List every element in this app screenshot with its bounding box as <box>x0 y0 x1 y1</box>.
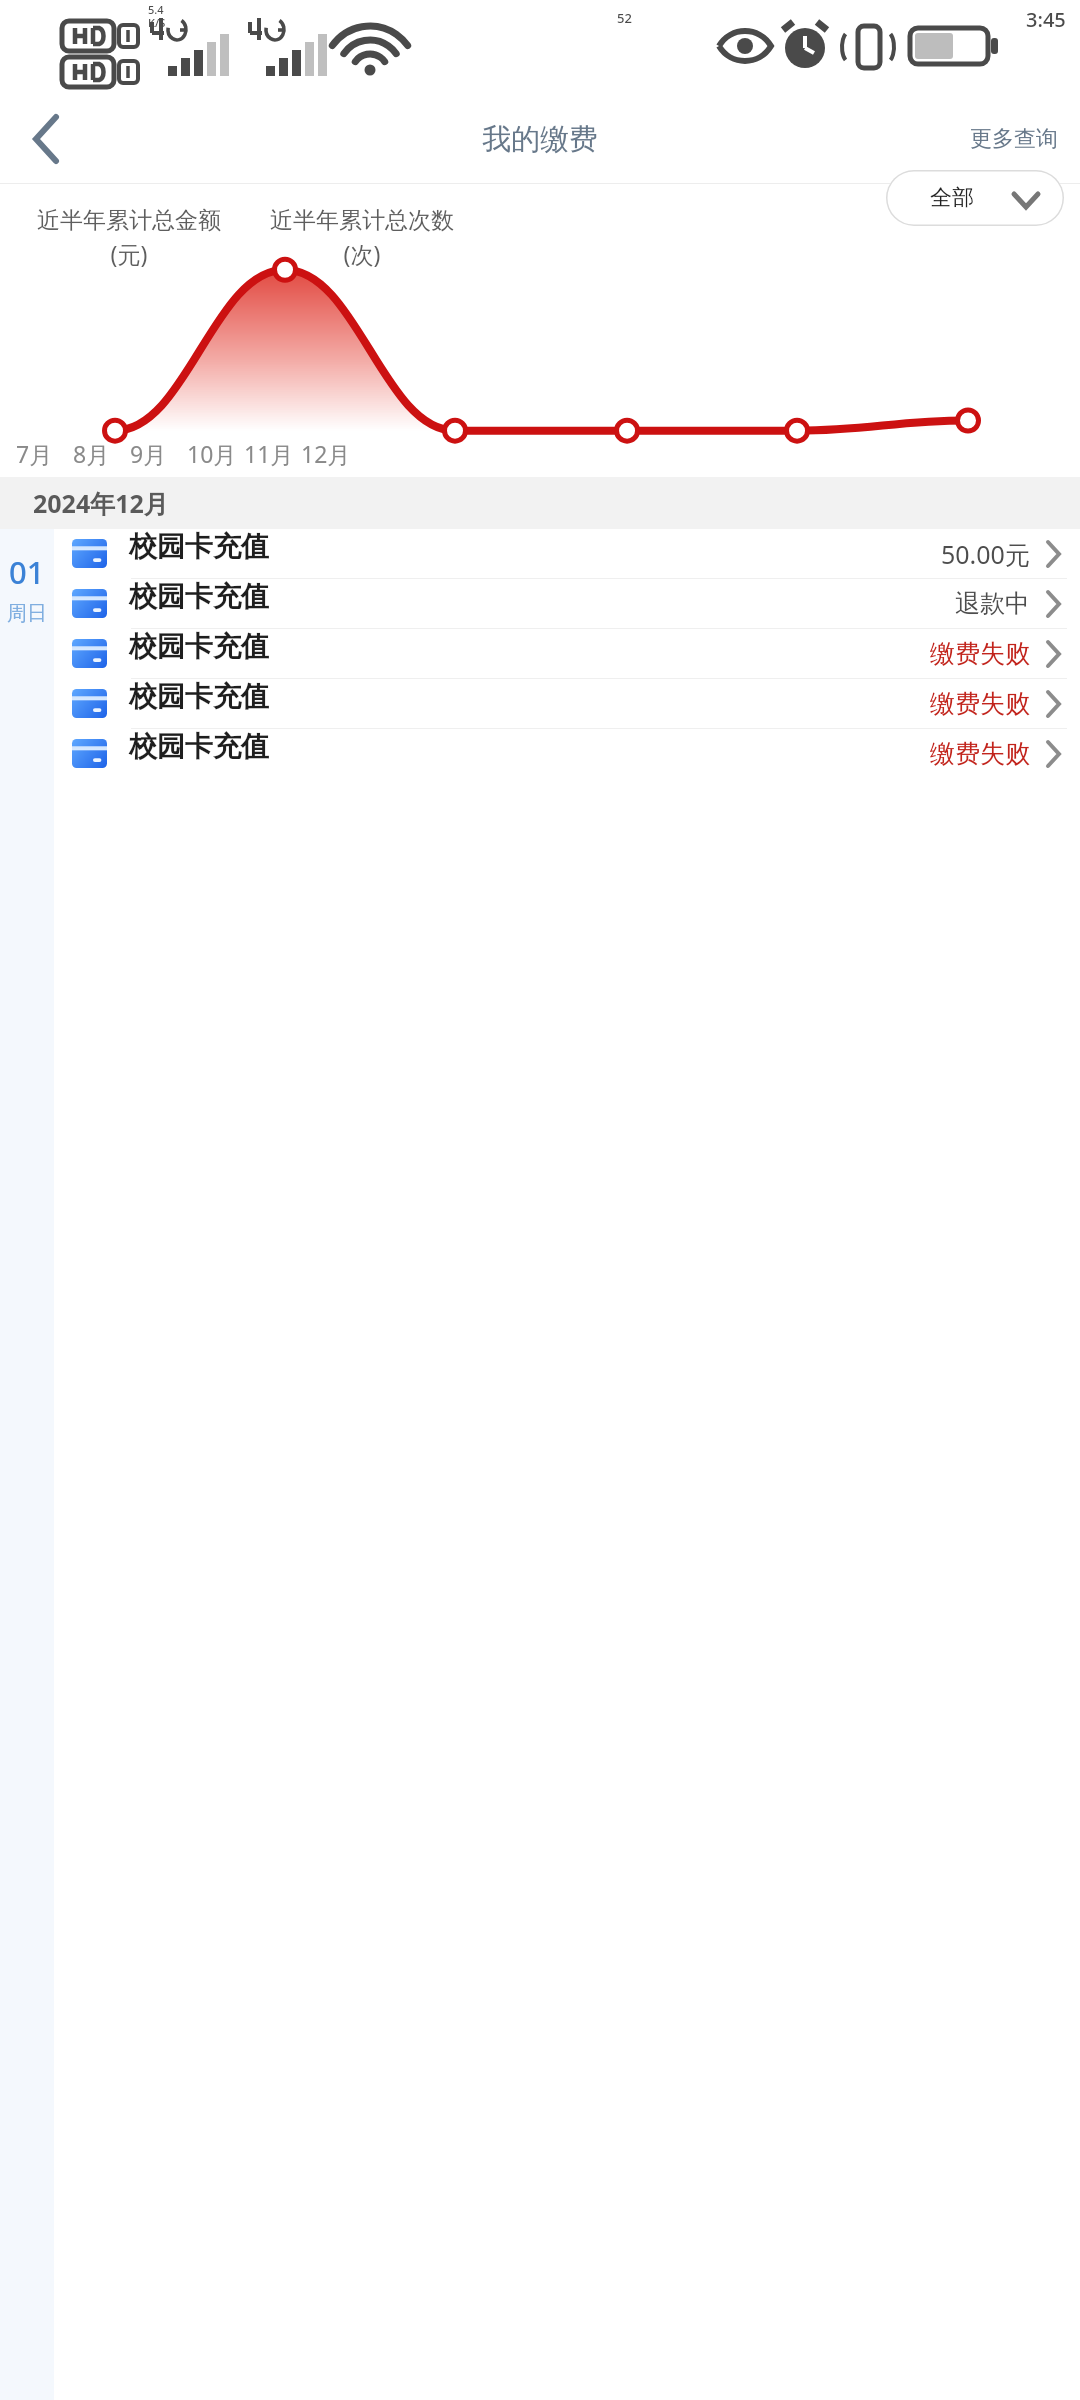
staticText: 7月 <box>16 438 53 469</box>
button[interactable]: 校园卡充值 <box>54 629 1080 678</box>
staticText: 01 <box>9 551 45 593</box>
staticText: 全部 <box>930 184 974 212</box>
staticText: 近半年累计总次数 (次) <box>270 206 454 270</box>
staticText: 2024年12月 <box>33 486 169 520</box>
staticText: 更多查询 <box>970 125 1058 153</box>
button[interactable]: 校园卡充值 <box>54 529 1080 578</box>
button[interactable]: 全部 <box>886 170 1064 226</box>
staticText: 周日 <box>7 601 47 626</box>
button[interactable]: 校园卡充值 <box>54 729 1080 778</box>
staticText: 12月 <box>301 438 351 469</box>
staticText: 9月 <box>130 438 167 469</box>
button[interactable]: Back <box>10 103 82 175</box>
staticText: 我的缴费 <box>482 121 598 158</box>
staticText: 校园卡充值 <box>129 579 269 614</box>
staticText: 校园卡充值 <box>129 729 269 764</box>
button[interactable]: 校园卡充值 <box>54 579 1080 628</box>
staticText: 缴费失败 <box>930 638 1030 669</box>
button[interactable]: 更多查询 <box>964 113 1064 165</box>
staticText: 10月 <box>187 438 237 469</box>
staticText: 3:45 <box>1026 6 1066 33</box>
staticText: 8月 <box>73 438 110 469</box>
staticText: 近半年累计总金额 (元) <box>37 206 221 270</box>
staticText: 11月 <box>244 438 294 469</box>
staticText: 校园卡充值 <box>129 679 269 714</box>
staticText: 退款中 <box>955 588 1030 619</box>
button[interactable]: 校园卡充值 <box>54 679 1080 728</box>
staticText: 缴费失败 <box>930 688 1030 719</box>
staticText: 50.00元 <box>941 537 1030 571</box>
staticText: 缴费失败 <box>930 738 1030 769</box>
staticText: 校园卡充值 <box>129 529 269 564</box>
staticText: 5.4 K/S <box>148 2 166 30</box>
staticText: 52 <box>617 9 632 27</box>
staticText: 校园卡充值 <box>129 629 269 664</box>
